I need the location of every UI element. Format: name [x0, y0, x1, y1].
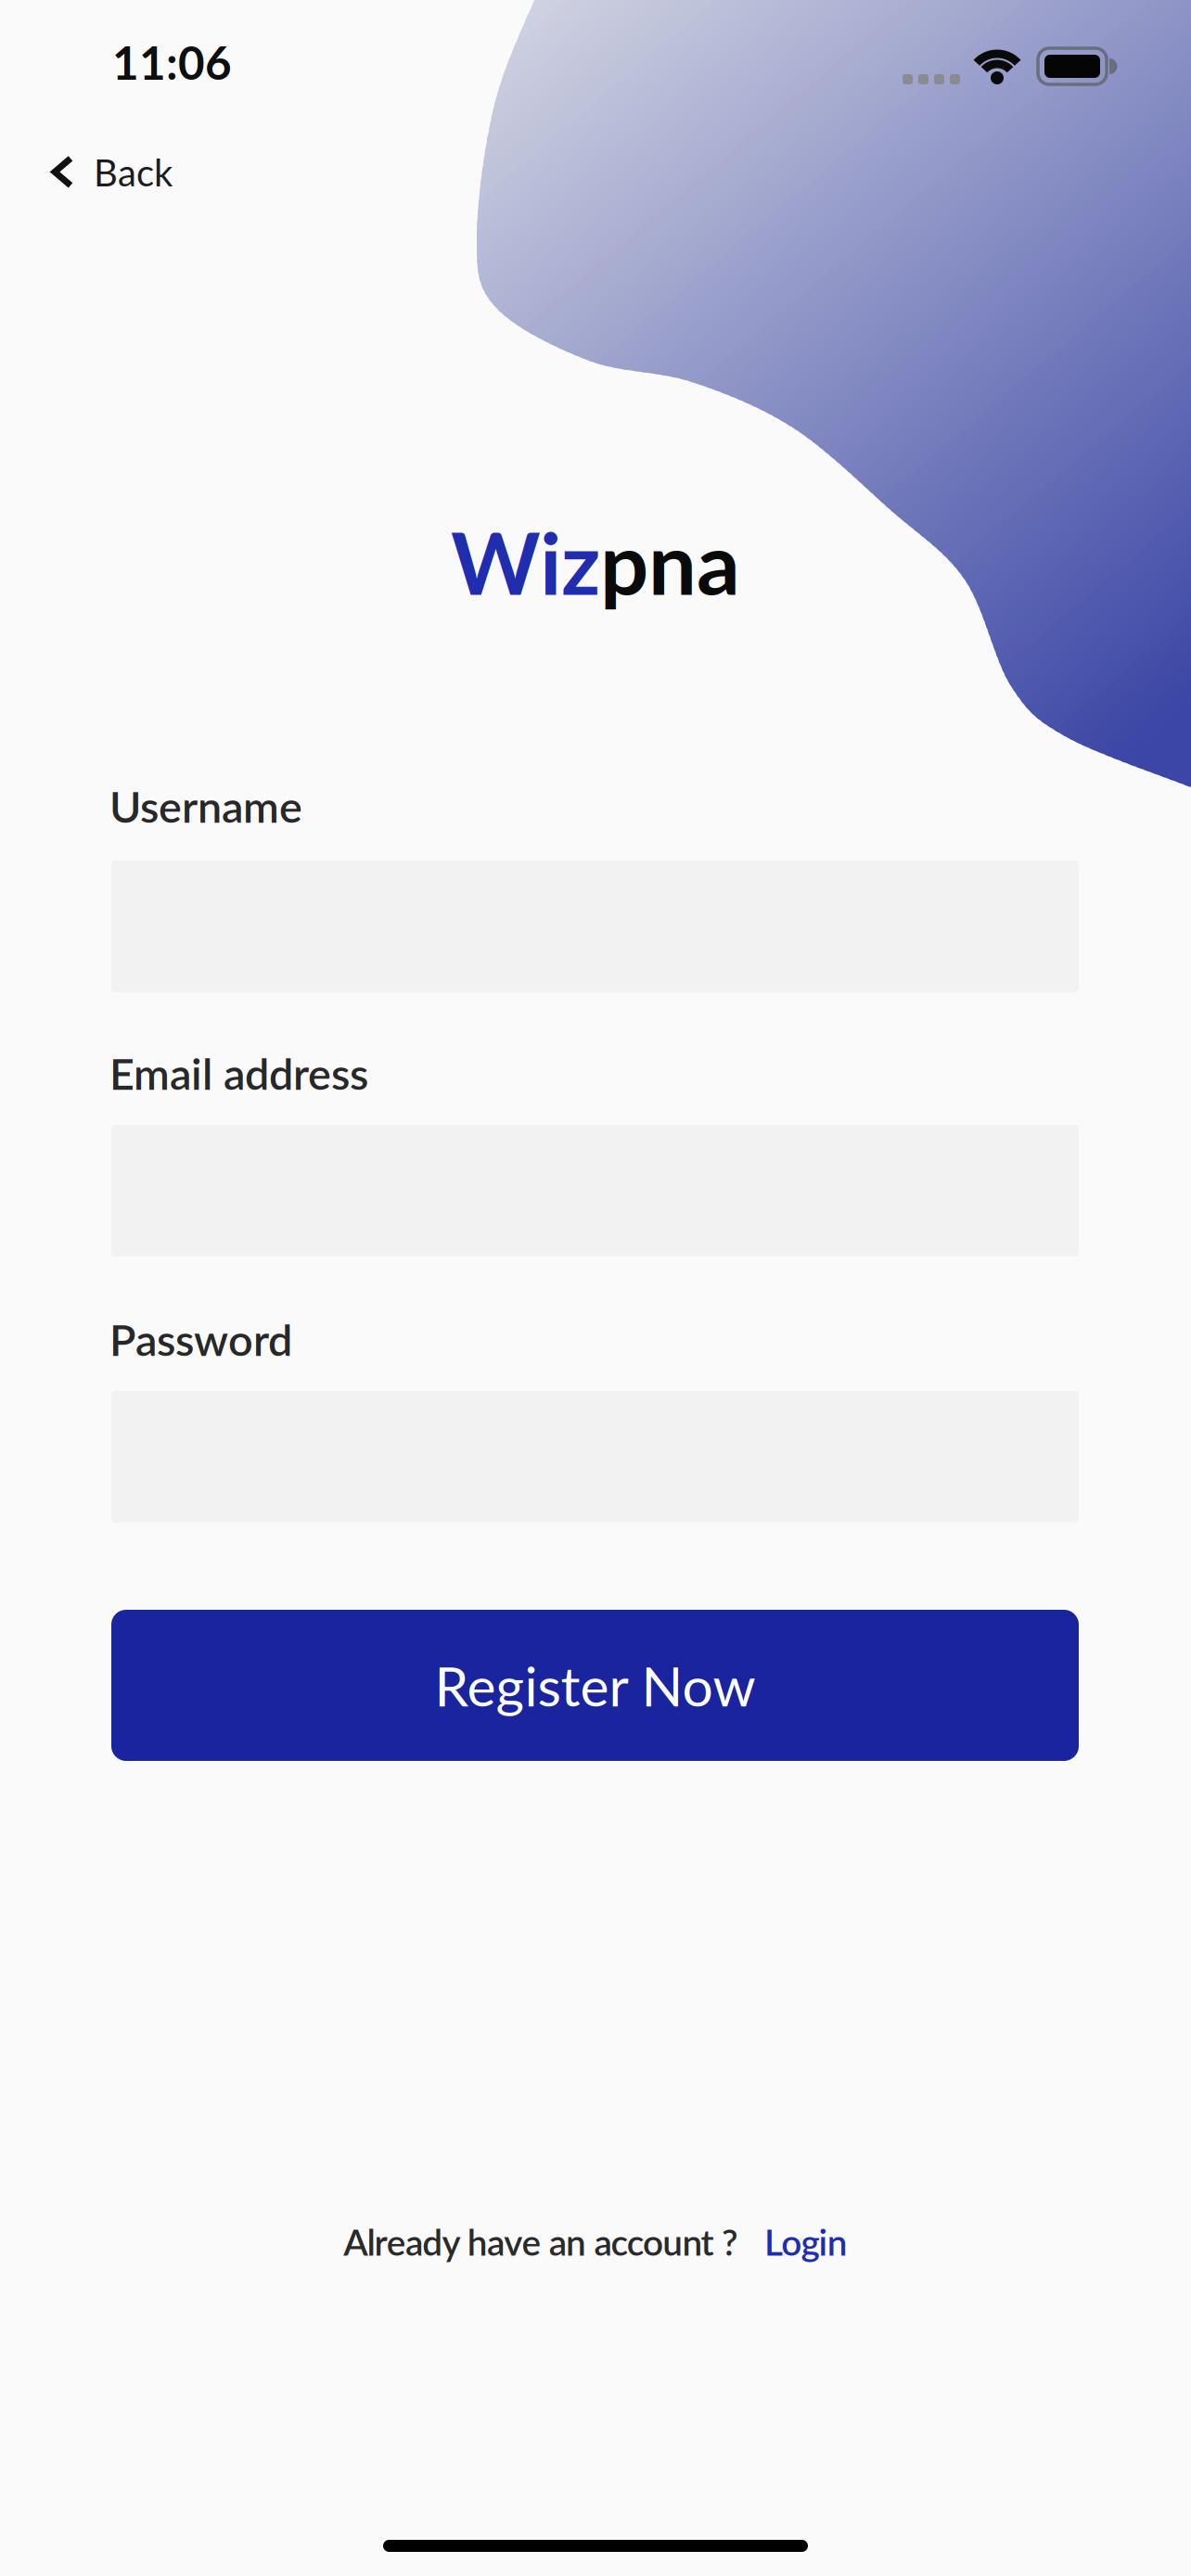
staticText: Back	[94, 150, 173, 194]
staticText: Login	[764, 2221, 848, 2263]
button[interactable]: Login	[764, 2221, 848, 2263]
staticText: Register Now	[435, 1654, 756, 1717]
staticText: Password	[109, 1314, 292, 1365]
button[interactable]: Register Now	[111, 1610, 1079, 1761]
staticText: pna	[600, 512, 740, 612]
staticText: Username	[109, 781, 302, 831]
staticText: Already have an account ?	[343, 2221, 738, 2263]
button[interactable]: Back	[52, 150, 173, 194]
staticText: Email address	[109, 1048, 368, 1098]
staticText: Wiz	[451, 512, 600, 612]
staticText: 11:06	[112, 35, 232, 89]
